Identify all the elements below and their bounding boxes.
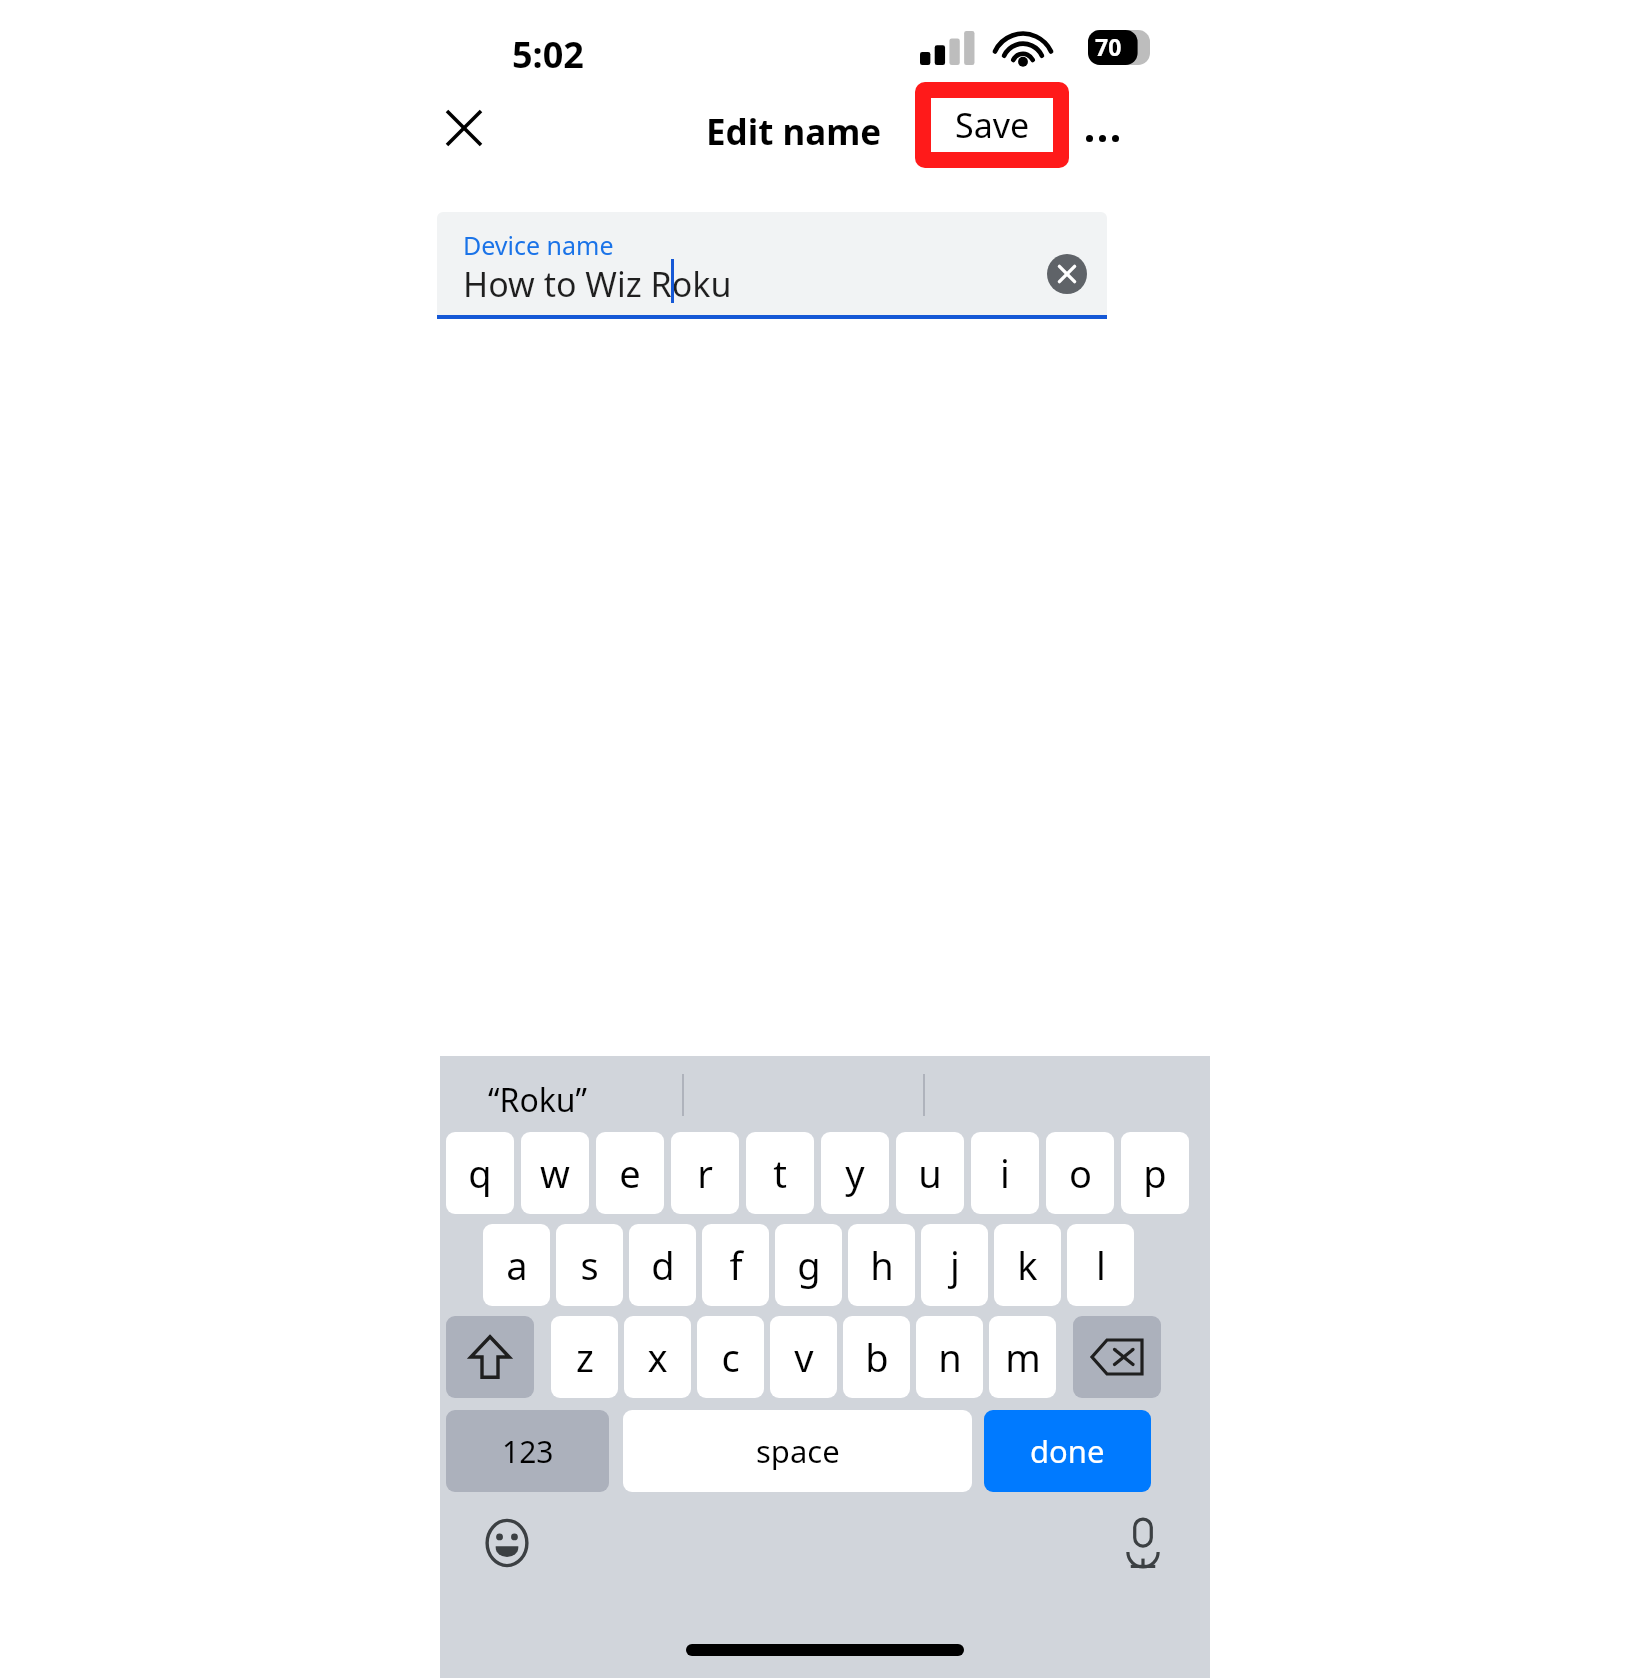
button[interactable]: o: [1046, 1132, 1114, 1214]
button[interactable]: Device name: [437, 212, 1107, 316]
button[interactable]: Emoji: [478, 1514, 536, 1572]
staticText: 123: [502, 1431, 554, 1472]
button[interactable]: a: [483, 1224, 550, 1306]
button[interactable]: More options: [1076, 118, 1128, 158]
staticText: w: [540, 1147, 570, 1199]
button[interactable]: t: [746, 1132, 814, 1214]
button[interactable]: s: [556, 1224, 623, 1306]
staticText: g: [797, 1239, 821, 1291]
button[interactable]: j: [921, 1224, 988, 1306]
staticText: u: [918, 1147, 942, 1199]
button[interactable]: l: [1067, 1224, 1134, 1306]
staticText: h: [870, 1239, 894, 1291]
button[interactable]: m: [989, 1316, 1056, 1398]
button[interactable]: i: [971, 1132, 1039, 1214]
button[interactable]: Close: [432, 96, 496, 160]
button[interactable]: Backspace: [1073, 1316, 1161, 1398]
button[interactable]: u: [896, 1132, 964, 1214]
staticText: i: [1000, 1147, 1010, 1199]
button[interactable]: k: [994, 1224, 1061, 1306]
staticText: s: [580, 1239, 599, 1291]
staticText: x: [647, 1331, 668, 1383]
staticText: done: [1030, 1430, 1105, 1472]
staticText: m: [1005, 1331, 1041, 1383]
staticText: n: [938, 1331, 962, 1383]
staticText: v: [794, 1331, 814, 1383]
staticText: Edit name: [706, 108, 882, 156]
staticText: z: [576, 1331, 594, 1383]
staticText: d: [651, 1239, 675, 1291]
staticText: q: [468, 1147, 492, 1199]
staticText: l: [1096, 1239, 1106, 1291]
staticText: a: [506, 1239, 528, 1291]
staticText: Save: [955, 102, 1030, 148]
button[interactable]: done: [984, 1410, 1151, 1492]
staticText: y: [845, 1147, 865, 1199]
button[interactable]: e: [596, 1132, 664, 1214]
button[interactable]: p: [1121, 1132, 1189, 1214]
staticText: p: [1143, 1147, 1167, 1199]
staticText: How to Wiz Roku: [463, 261, 732, 307]
button[interactable]: c: [697, 1316, 764, 1398]
button[interactable]: n: [916, 1316, 983, 1398]
button[interactable]: v: [770, 1316, 837, 1398]
button[interactable]: 123: [446, 1410, 609, 1492]
button[interactable]: x: [624, 1316, 691, 1398]
button[interactable]: z: [551, 1316, 618, 1398]
button[interactable]: y: [821, 1132, 889, 1214]
button[interactable]: h: [848, 1224, 915, 1306]
staticText: j: [950, 1239, 960, 1291]
button[interactable]: b: [843, 1316, 910, 1398]
button[interactable]: “Roku”: [488, 1078, 588, 1122]
staticText: f: [729, 1239, 743, 1291]
button[interactable]: r: [671, 1132, 739, 1214]
button[interactable]: q: [446, 1132, 514, 1214]
button[interactable]: Clear text: [1045, 252, 1089, 296]
button[interactable]: Shift: [446, 1316, 534, 1398]
button[interactable]: w: [521, 1132, 589, 1214]
staticText: Device name: [463, 228, 614, 262]
staticText: space: [756, 1430, 840, 1472]
button[interactable]: Save: [931, 98, 1053, 152]
staticText: 5:02: [512, 30, 584, 79]
button[interactable]: d: [629, 1224, 696, 1306]
staticText: c: [721, 1331, 740, 1383]
staticText: e: [619, 1147, 641, 1199]
button[interactable]: g: [775, 1224, 842, 1306]
staticText: 70: [1095, 31, 1122, 62]
button[interactable]: Dictate: [1114, 1514, 1172, 1572]
staticText: b: [865, 1331, 889, 1383]
staticText: t: [773, 1147, 787, 1199]
staticText: k: [1017, 1239, 1038, 1291]
button[interactable]: f: [702, 1224, 769, 1306]
button[interactable]: space: [623, 1410, 972, 1492]
staticText: r: [697, 1147, 713, 1199]
staticText: o: [1069, 1147, 1092, 1199]
